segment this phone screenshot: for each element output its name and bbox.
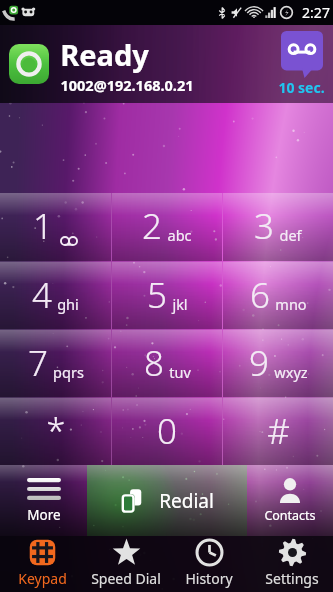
button[interactable]: 3	[223, 193, 333, 261]
button[interactable]: *	[0, 398, 111, 465]
staticText: History	[185, 569, 233, 588]
staticText: 1002@192.168.0.21	[60, 75, 194, 95]
staticText: wxyz	[274, 362, 308, 382]
button[interactable]: Speed Dial	[84, 536, 167, 592]
staticText: 2:27	[302, 3, 330, 22]
staticText: 5	[147, 271, 167, 319]
button[interactable]: 0	[112, 398, 222, 465]
staticText: Settings	[265, 569, 319, 588]
button[interactable]: 5	[112, 262, 222, 329]
staticText: Ready	[60, 35, 149, 74]
button[interactable]: 1	[0, 193, 111, 261]
button[interactable]: More	[0, 465, 87, 536]
staticText: Contacts	[264, 507, 316, 524]
staticText: 0	[157, 407, 177, 455]
staticText: 9	[249, 339, 269, 387]
staticText: abc	[167, 225, 192, 245]
staticText: Speed Dial	[91, 569, 161, 588]
staticText: #	[267, 407, 290, 455]
staticText: def	[279, 225, 302, 245]
staticText: 6	[250, 271, 270, 319]
button[interactable]: Keypad	[0, 536, 84, 592]
staticText: More	[27, 506, 61, 524]
staticText: *	[46, 407, 66, 455]
staticText: 8	[144, 339, 164, 387]
staticText: jkl	[172, 294, 188, 314]
button[interactable]: 8	[112, 330, 222, 397]
button[interactable]: 7	[0, 330, 111, 397]
staticText: 2	[142, 202, 162, 250]
button[interactable]: Redial	[87, 465, 247, 536]
staticText: 10 sec.	[278, 78, 325, 97]
staticText: Keypad	[18, 569, 67, 588]
staticText: tuv	[169, 362, 191, 382]
staticText: ghi	[57, 294, 79, 314]
staticText: pqrs	[53, 362, 84, 382]
staticText: 1	[33, 202, 53, 250]
staticText: 7	[28, 339, 48, 387]
button[interactable]: Voicemail	[281, 31, 323, 78]
button[interactable]: #	[223, 398, 333, 465]
staticText: 4	[32, 271, 52, 319]
button[interactable]: 2	[112, 193, 222, 261]
button[interactable]: 4	[0, 262, 111, 329]
staticText: 3	[254, 202, 274, 250]
button[interactable]: Contacts	[247, 465, 333, 536]
staticText: mno	[275, 294, 307, 314]
button[interactable]: Settings	[250, 536, 333, 592]
button[interactable]: History	[167, 536, 250, 592]
button[interactable]: 9	[223, 330, 333, 397]
staticText: Redial	[159, 488, 214, 514]
button[interactable]: 6	[223, 262, 333, 329]
